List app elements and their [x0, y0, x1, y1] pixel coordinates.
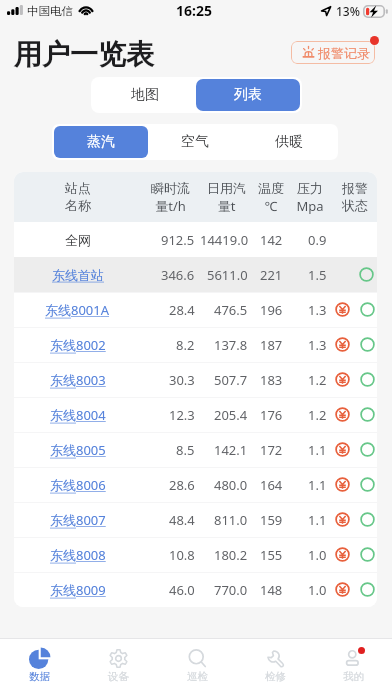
staticText: 28.4	[169, 301, 195, 319]
staticText: 164	[260, 476, 283, 494]
staticText: 巡检	[187, 670, 208, 683]
staticText: 0.9	[308, 231, 327, 249]
staticText: 196	[260, 301, 283, 319]
button[interactable]: 设备	[79, 639, 158, 696]
button[interactable]: 空气	[148, 126, 242, 158]
staticText: 180.2	[214, 546, 248, 564]
staticText: 东线8006	[50, 476, 106, 494]
staticText: 报警记录	[318, 45, 370, 61]
staticText: 蒸汽	[87, 133, 115, 151]
staticText: 供暖	[275, 133, 303, 151]
staticText: 912.5	[161, 231, 195, 249]
staticText: 1.0	[308, 546, 327, 564]
staticText: 221	[260, 266, 283, 284]
button[interactable]: 报警记录	[291, 41, 375, 64]
staticText: 1.3	[308, 301, 327, 319]
staticText: 地图	[131, 86, 159, 104]
button[interactable]: 东线8004	[14, 397, 377, 432]
staticText: 空气	[181, 133, 209, 151]
staticText: 172	[260, 441, 283, 459]
staticText: 用户一览表	[14, 37, 154, 72]
button[interactable]: 东线8002	[14, 327, 377, 362]
staticText: 1.1	[308, 476, 327, 494]
staticText: 1.1	[308, 511, 327, 529]
staticText: 507.7	[214, 371, 248, 389]
staticText: 列表	[234, 86, 262, 104]
staticText: 476.5	[214, 301, 248, 319]
staticText: 205.4	[214, 406, 248, 424]
staticText: 东线8003	[50, 371, 106, 389]
button[interactable]: 东线首站	[14, 257, 377, 292]
button[interactable]: 地图	[93, 79, 196, 111]
staticText: 温度 ℃	[258, 180, 284, 215]
staticText: 东线8001A	[45, 301, 110, 319]
staticText: 30.3	[169, 371, 195, 389]
staticText: 全网	[65, 232, 91, 248]
staticText: 我的	[343, 670, 364, 683]
staticText: 142.1	[214, 441, 248, 459]
staticText: 1.0	[308, 581, 327, 599]
button[interactable]: 我的	[314, 639, 392, 696]
staticText: 183	[260, 371, 283, 389]
staticText: 346.6	[161, 266, 195, 284]
staticText: 1.1	[308, 441, 327, 459]
button[interactable]: 东线8008	[14, 537, 377, 572]
staticText: 148	[260, 581, 283, 599]
button[interactable]: 东线8003	[14, 362, 377, 397]
staticText: 报警 状态	[342, 180, 368, 214]
staticText: 设备	[108, 670, 129, 683]
staticText: 5611.0	[207, 266, 248, 284]
staticText: 1.3	[308, 336, 327, 354]
staticText: 10.8	[169, 546, 195, 564]
button[interactable]: 巡检	[158, 639, 236, 696]
staticText: 12.3	[169, 406, 195, 424]
staticText: 压力 Mpa	[296, 180, 324, 215]
button[interactable]: 东线8006	[14, 467, 377, 502]
staticText: 中国电信	[27, 4, 73, 18]
button[interactable]: 东线8009	[14, 572, 377, 607]
staticText: 16:25	[176, 1, 212, 20]
staticText: 48.4	[169, 511, 195, 529]
staticText: 142	[260, 231, 283, 249]
staticText: 480.0	[214, 476, 248, 494]
button[interactable]: 蒸汽	[54, 126, 148, 158]
button[interactable]: 全网	[14, 222, 377, 257]
button[interactable]: 东线8005	[14, 432, 377, 467]
staticText: 14419.0	[200, 231, 248, 249]
staticText: 日用汽 量t	[207, 180, 246, 215]
button[interactable]: 供暖	[242, 126, 336, 158]
staticText: 瞬时流 量t/h	[151, 180, 190, 215]
staticText: 东线8007	[50, 511, 106, 529]
staticText: 东线8005	[50, 441, 106, 459]
staticText: 检修	[265, 670, 286, 683]
staticText: 811.0	[214, 511, 248, 529]
staticText: 28.6	[169, 476, 195, 494]
button[interactable]: 列表	[196, 79, 300, 111]
staticText: 137.8	[214, 336, 248, 354]
staticText: 东线8002	[50, 336, 106, 354]
button[interactable]: 检修	[236, 639, 314, 696]
staticText: 176	[260, 406, 283, 424]
staticText: 东线8004	[50, 406, 106, 424]
staticText: 8.5	[176, 441, 195, 459]
staticText: 1.2	[308, 406, 327, 424]
staticText: 159	[260, 511, 283, 529]
button[interactable]: 东线8007	[14, 502, 377, 537]
staticText: 187	[260, 336, 283, 354]
staticText: 东线8009	[50, 581, 106, 599]
staticText: 8.2	[176, 336, 195, 354]
staticText: 1.2	[308, 371, 327, 389]
staticText: 13%	[336, 3, 360, 19]
button[interactable]: 数据	[0, 639, 79, 696]
staticText: 数据	[29, 670, 50, 683]
staticText: 155	[260, 546, 283, 564]
staticText: 东线8008	[50, 546, 106, 564]
staticText: 46.0	[169, 581, 195, 599]
staticText: 770.0	[214, 581, 248, 599]
button[interactable]: 东线8001A	[14, 292, 377, 327]
staticText: 站点 名称	[65, 180, 91, 214]
staticText: 1.5	[308, 266, 327, 284]
staticText: 东线首站	[52, 267, 104, 283]
